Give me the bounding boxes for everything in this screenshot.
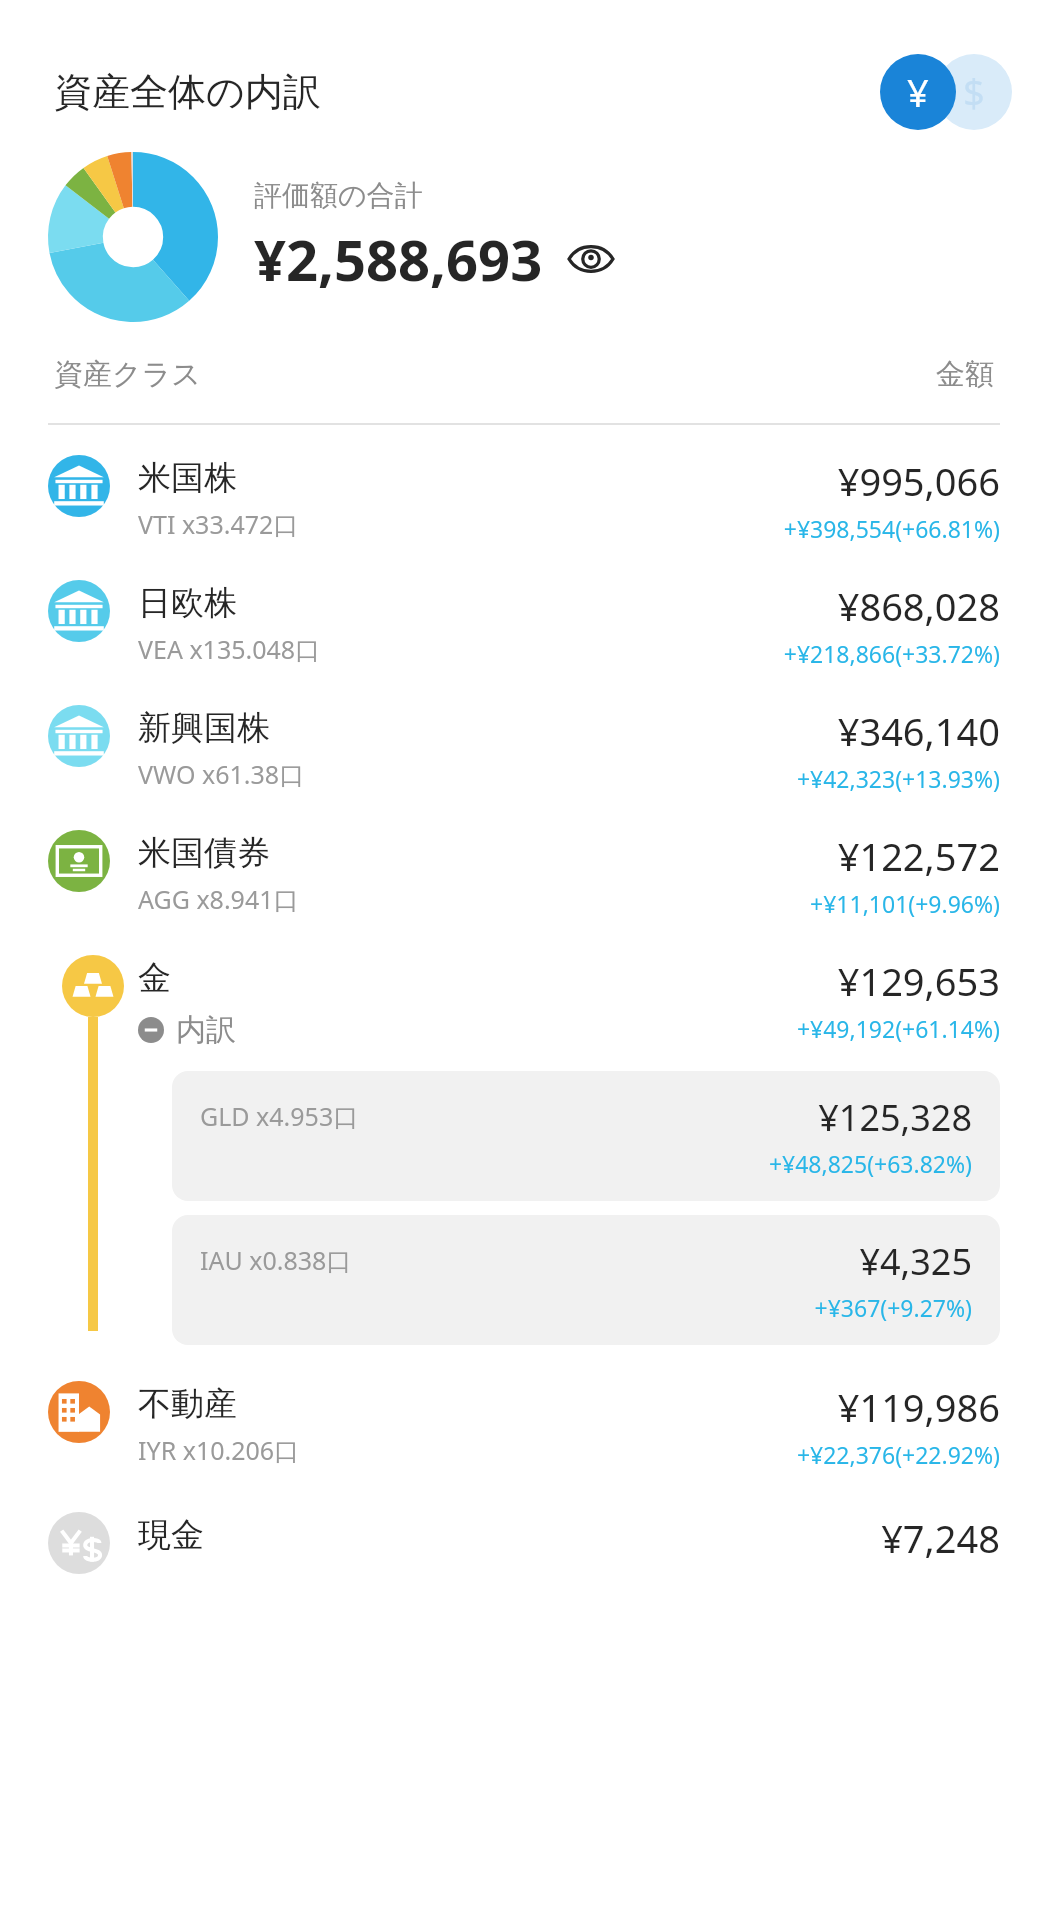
button[interactable]: GLD x4.953口	[172, 1071, 1000, 1201]
staticText: 米国株	[138, 457, 237, 499]
staticText: 新興国株	[138, 707, 270, 749]
staticText: 米国債券	[138, 832, 270, 874]
button[interactable]: 日欧株	[48, 580, 1000, 669]
staticText: AGG x8.941口	[138, 882, 299, 916]
button[interactable]: 通貨切替	[880, 54, 1012, 130]
button[interactable]: 金	[138, 955, 1000, 1049]
staticText: ¥346,140	[837, 705, 1000, 757]
staticText: 評価額の合計	[254, 178, 423, 213]
staticText: 資産クラス	[54, 356, 936, 393]
button[interactable]: 米国株	[48, 455, 1000, 544]
staticText: ¥868,028	[837, 580, 1000, 632]
staticText: 現金	[138, 1514, 204, 1556]
staticText: +¥367(+9.27%)	[814, 1292, 972, 1323]
staticText: GLD x4.953口	[200, 1099, 768, 1133]
staticText: +¥11,101(+9.96%)	[810, 888, 1000, 919]
staticText: ¥4,325	[859, 1237, 972, 1286]
staticText: ¥122,572	[837, 830, 1000, 882]
button[interactable]: 不動産	[48, 1381, 1000, 1470]
staticText: IYR x10.206口	[138, 1433, 300, 1467]
staticText: +¥398,554(+66.81%)	[783, 513, 1000, 544]
button[interactable]: 金額の表示切替	[563, 231, 619, 287]
staticText: VTI x33.472口	[138, 507, 299, 541]
staticText: ¥129,653	[837, 955, 1000, 1007]
staticText: +¥42,323(+13.93%)	[796, 763, 1000, 794]
button[interactable]: IAU x0.838口	[172, 1215, 1000, 1345]
staticText: +¥218,866(+33.72%)	[783, 638, 1000, 669]
staticText: VWO x61.38口	[138, 757, 305, 791]
staticText: +¥49,192(+61.14%)	[796, 1013, 1000, 1044]
staticText: ¥125,328	[818, 1093, 972, 1142]
button[interactable]: 内訳	[138, 1011, 236, 1049]
staticText: +¥48,825(+63.82%)	[768, 1148, 972, 1179]
staticText: 日欧株	[138, 582, 237, 624]
staticText: $	[963, 66, 985, 118]
staticText: IAU x0.838口	[200, 1243, 814, 1277]
button[interactable]: 現金	[48, 1512, 1000, 1574]
staticText: +¥22,376(+22.92%)	[796, 1439, 1000, 1470]
staticText: 不動産	[138, 1383, 237, 1425]
button[interactable]: 新興国株	[48, 705, 1000, 794]
staticText: ¥	[907, 66, 929, 118]
staticText: ¥2,588,693	[254, 221, 543, 297]
button[interactable]: 米国債券	[48, 830, 1000, 919]
staticText: 金額	[936, 356, 994, 393]
staticText: ¥7,248	[881, 1512, 1000, 1564]
staticText: VEA x135.048口	[138, 632, 321, 666]
staticText: 金	[138, 957, 171, 999]
staticText: ¥119,986	[837, 1381, 1000, 1433]
staticText: 資産全体の内訳	[54, 68, 880, 116]
staticText: ¥995,066	[837, 455, 1000, 507]
staticText: 内訳	[176, 1011, 236, 1049]
